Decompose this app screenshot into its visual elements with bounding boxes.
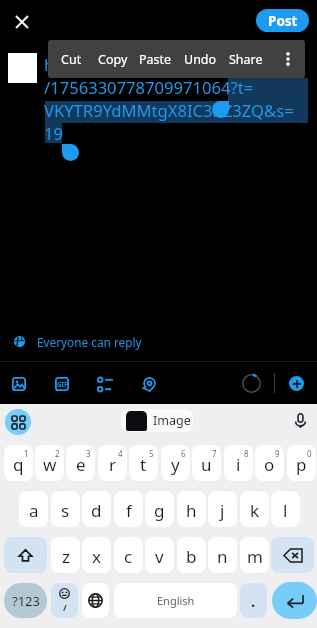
button[interactable]: t — [129, 445, 158, 481]
button[interactable]: Paste — [132, 40, 178, 78]
staticText: https://x.com/i/status — [44, 53, 212, 76]
staticText: / — [63, 601, 67, 613]
button[interactable]: k — [240, 491, 269, 527]
button[interactable]: Add GIF — [45, 366, 79, 400]
button[interactable]: u — [192, 445, 221, 481]
staticText: j — [220, 499, 225, 522]
button[interactable]: l — [271, 491, 300, 527]
button[interactable]: o — [255, 445, 284, 481]
button[interactable]: d — [82, 491, 111, 527]
staticText: English — [157, 593, 195, 608]
staticText: 1 — [24, 448, 29, 459]
staticText: a — [29, 499, 39, 522]
staticText: 19 — [44, 122, 63, 145]
staticText: 8 — [244, 448, 249, 459]
button[interactable]: Copy — [92, 40, 133, 78]
staticText: y — [171, 453, 180, 476]
staticText: Everyone can reply — [37, 334, 142, 350]
staticText: h — [186, 499, 197, 522]
button[interactable]: Backspace — [271, 537, 314, 573]
staticText: t — [140, 453, 147, 476]
button[interactable]: Language — [82, 583, 109, 618]
button[interactable]: s — [51, 491, 80, 527]
staticText: i — [236, 453, 241, 476]
staticText: o — [264, 453, 275, 476]
button[interactable]: x — [82, 537, 111, 573]
staticText: . — [251, 591, 256, 611]
button[interactable]: v — [145, 537, 174, 573]
button[interactable]: Cut — [50, 40, 92, 78]
button[interactable]: m — [240, 537, 269, 573]
staticText: u — [201, 453, 212, 476]
staticText: 4 — [118, 448, 123, 459]
button[interactable]: Everyone can reply — [0, 326, 317, 357]
button[interactable]: Undo — [178, 40, 223, 78]
button[interactable]: n — [208, 537, 237, 573]
button[interactable]: i — [224, 445, 253, 481]
button[interactable]: p — [287, 445, 316, 481]
button[interactable]: Shift — [4, 537, 47, 573]
button[interactable]: Share — [225, 40, 267, 78]
staticText: p — [296, 453, 307, 476]
staticText: n — [217, 545, 228, 568]
button[interactable]: ?123 — [4, 583, 47, 618]
staticText: x — [92, 545, 101, 568]
staticText: w — [43, 453, 57, 476]
button[interactable]: h — [177, 491, 206, 527]
staticText: Copy — [98, 51, 128, 68]
staticText: Paste — [139, 51, 172, 68]
button[interactable]: Image — [121, 409, 193, 432]
staticText: m — [247, 545, 263, 568]
button[interactable]: q — [4, 445, 33, 481]
button[interactable]: c — [114, 537, 143, 573]
button[interactable]: English — [114, 583, 237, 618]
button[interactable]: More options — [273, 40, 302, 78]
staticText: Cut — [61, 51, 82, 68]
button[interactable]: Add poll — [89, 366, 123, 400]
button[interactable]: a — [19, 491, 48, 527]
button[interactable]: Add post — [289, 376, 304, 391]
staticText: 6 — [181, 448, 186, 459]
button[interactable]: Close — [10, 10, 34, 34]
staticText: 7 — [212, 448, 217, 459]
button[interactable]: Keyboard apps — [5, 409, 31, 435]
button[interactable]: w — [35, 445, 64, 481]
staticText: z — [62, 545, 70, 568]
button[interactable]: Add photo — [2, 366, 36, 400]
button[interactable]: b — [177, 537, 206, 573]
staticText: Share — [229, 51, 263, 68]
button[interactable]: g — [145, 491, 174, 527]
staticText: 0 — [307, 448, 312, 459]
button[interactable]: z — [51, 537, 80, 573]
button[interactable]: y — [161, 445, 190, 481]
button[interactable]: Post — [256, 9, 309, 32]
staticText: v — [155, 545, 164, 568]
button[interactable]: Enter — [272, 582, 317, 619]
staticText: Image — [153, 412, 191, 429]
staticText: 3 — [86, 448, 91, 459]
staticText: 2 — [55, 448, 60, 459]
staticText: Post — [268, 12, 298, 30]
staticText: g — [154, 499, 165, 522]
button[interactable]: e — [66, 445, 95, 481]
staticText: k — [250, 499, 260, 522]
staticText: e — [76, 453, 86, 476]
staticText: q — [13, 453, 24, 476]
staticText: r — [109, 453, 117, 476]
staticText: 5 — [149, 448, 154, 459]
staticText: f — [126, 499, 132, 522]
button[interactable]: Emoji — [51, 583, 78, 618]
staticText: s — [61, 499, 70, 522]
button[interactable]: Voice input — [288, 408, 312, 432]
staticText: VKYTR9YdMMtgX8IC3hZ3ZQ&s= — [44, 99, 294, 122]
staticText: ?123 — [12, 592, 40, 610]
button[interactable]: f — [114, 491, 143, 527]
staticText: 9 — [275, 448, 280, 459]
button[interactable]: . — [240, 583, 267, 618]
button[interactable]: Tag location — [132, 366, 166, 400]
button[interactable]: r — [98, 445, 127, 481]
staticText: d — [91, 499, 102, 522]
button[interactable]: j — [208, 491, 237, 527]
staticText: Undo — [184, 51, 217, 68]
staticText: /1756330778709971064?t= — [44, 76, 254, 99]
